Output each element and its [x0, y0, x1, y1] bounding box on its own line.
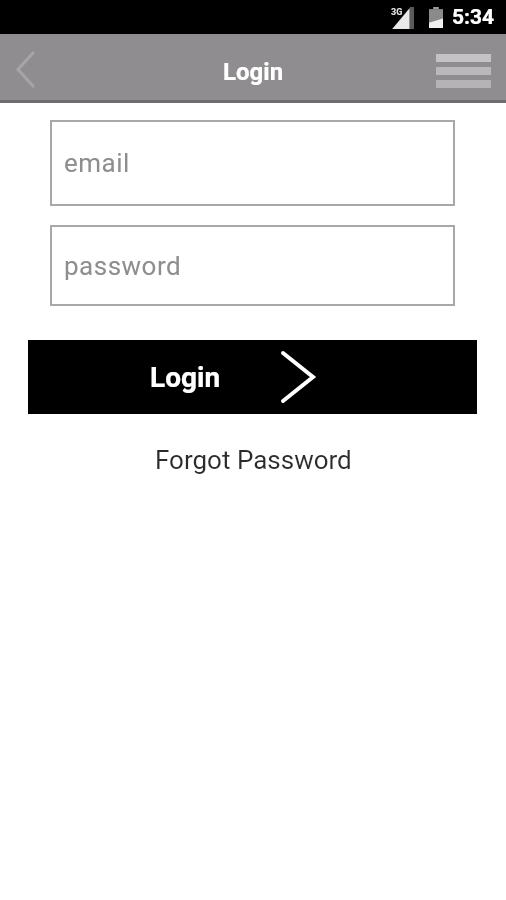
staticText: Login: [223, 58, 284, 86]
staticText: Login: [150, 361, 221, 394]
button[interactable]: password: [50, 225, 455, 306]
button[interactable]: Forgot Password: [155, 445, 352, 475]
button[interactable]: [8, 47, 42, 91]
staticText: password: [64, 251, 182, 281]
staticText: 5:34: [452, 5, 495, 30]
button[interactable]: [436, 54, 491, 88]
button[interactable]: Login: [28, 340, 477, 414]
staticText: email: [64, 148, 130, 178]
staticText: 3G: [391, 7, 403, 18]
button[interactable]: email: [50, 120, 455, 206]
